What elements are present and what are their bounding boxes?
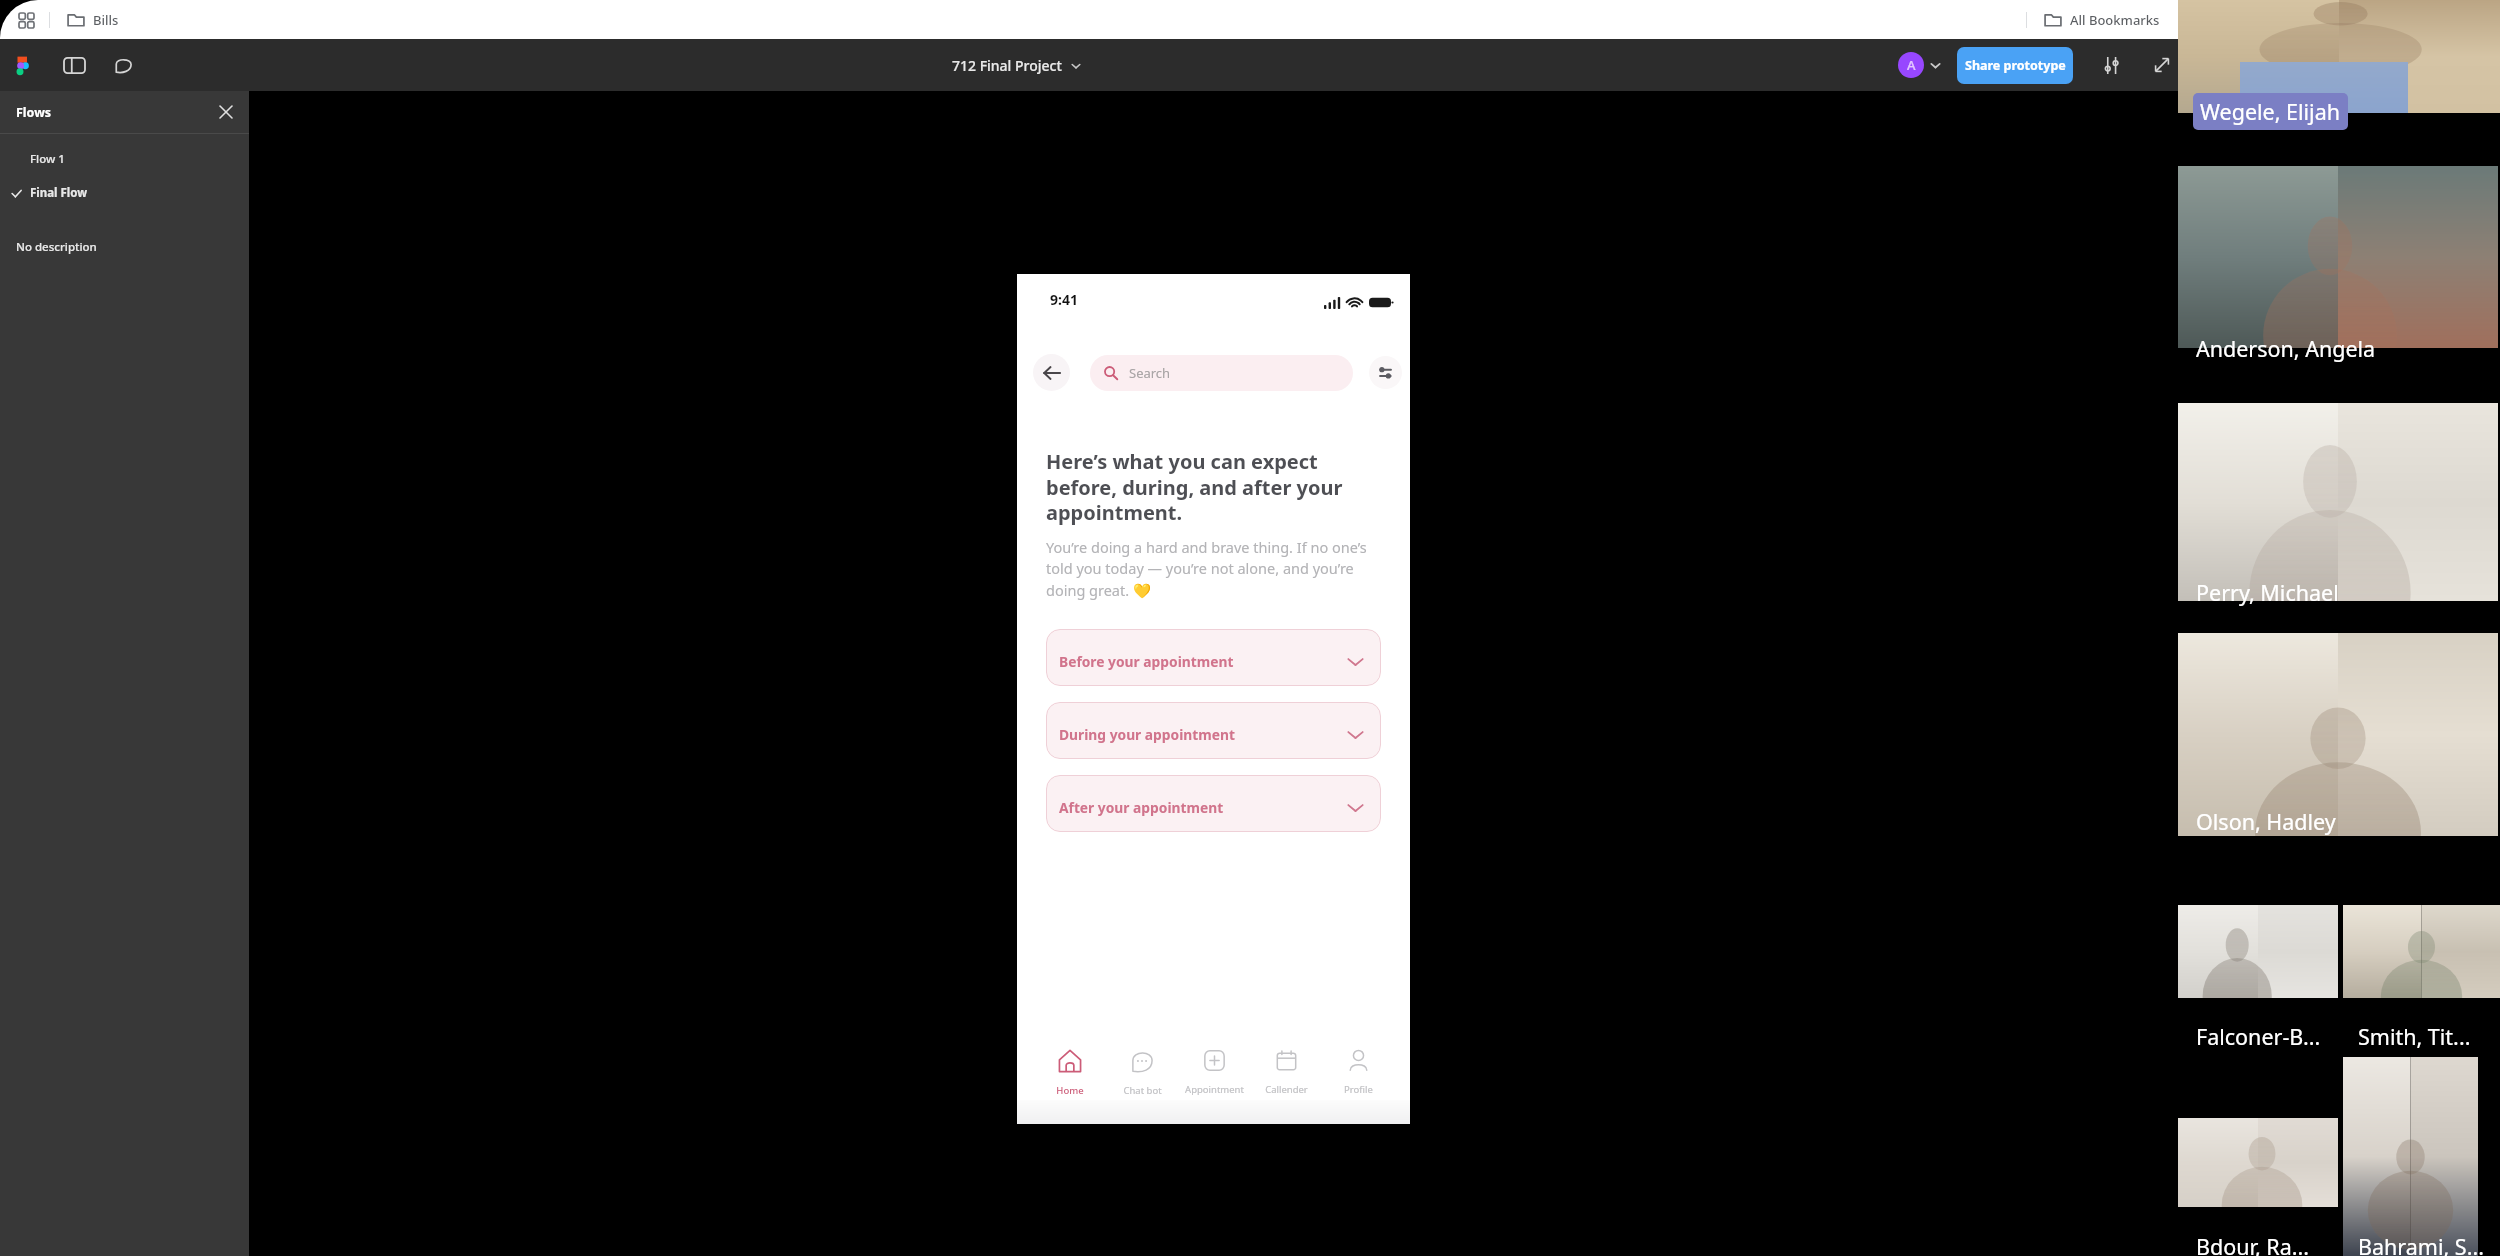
button[interactable]: Close flows	[213, 99, 239, 125]
button[interactable]: After your appointment	[1046, 775, 1381, 832]
button[interactable]: Profile	[1322, 1049, 1394, 1100]
button[interactable]: Search	[1090, 355, 1353, 391]
staticText: All Bookmarks	[2070, 11, 2160, 29]
button[interactable]: Figma home	[10, 52, 37, 79]
button[interactable]: Toggle sidebar	[61, 52, 87, 78]
staticText: Flow 1	[30, 151, 65, 167]
button[interactable]: During your appointment	[1046, 702, 1381, 759]
staticText: Bdour, Ra...	[2196, 1232, 2310, 1256]
button[interactable]: Filter	[1369, 356, 1402, 389]
staticText: Callender	[1265, 1083, 1308, 1096]
button[interactable]: Home	[1033, 1049, 1106, 1100]
staticText: Olson, Hadley	[2196, 807, 2336, 836]
staticText: Search	[1129, 364, 1171, 382]
staticText: Flows	[16, 104, 52, 121]
button[interactable]: Chat bot	[1106, 1049, 1178, 1100]
staticText: Wegele, Elijah	[2200, 97, 2341, 126]
staticText: A	[1907, 56, 1916, 74]
button[interactable]: Appointment	[1178, 1049, 1250, 1100]
staticText: Bills	[93, 11, 119, 29]
button[interactable]: Before your appointment	[1046, 629, 1381, 686]
staticText: Profile	[1344, 1083, 1373, 1096]
button[interactable]: Prototype settings	[2097, 51, 2125, 79]
staticText: Falconer-B...	[2196, 1022, 2321, 1051]
staticText: Here’s what you can expect before, durin…	[1046, 448, 1343, 525]
staticText: Perry, Michael	[2196, 578, 2339, 607]
staticText: Smith, Tit...	[2358, 1022, 2471, 1051]
staticText: Chat bot	[1123, 1084, 1162, 1097]
staticText: 9:41	[1050, 290, 1078, 309]
staticText: Home	[1056, 1084, 1084, 1097]
staticText: Share prototype	[1965, 57, 2066, 74]
button[interactable]: Share prototype	[1957, 47, 2073, 84]
button[interactable]: Final Flow	[0, 179, 249, 207]
button[interactable]: All Bookmarks	[2040, 7, 2164, 33]
button[interactable]: A	[1898, 52, 1941, 78]
staticText: 712 Final Project	[952, 56, 1062, 75]
button[interactable]: Back	[1033, 354, 1070, 391]
staticText: You’re doing a hard and brave thing. If …	[1046, 537, 1367, 600]
button[interactable]: Fullscreen	[2148, 51, 2176, 79]
staticText: Before your appointment	[1059, 652, 1234, 671]
button[interactable]: Bills	[63, 7, 123, 33]
button[interactable]: 712 Final Project	[952, 56, 1081, 75]
staticText: After your appointment	[1059, 798, 1224, 817]
staticText: No description	[16, 239, 97, 255]
button[interactable]: Callender	[1250, 1049, 1322, 1100]
staticText: Appointment	[1185, 1083, 1244, 1096]
staticText: Final Flow	[30, 185, 88, 201]
staticText: Anderson, Angela	[2196, 334, 2376, 363]
button[interactable]: Flow 1	[0, 145, 249, 173]
button[interactable]: Comment	[110, 52, 136, 78]
button[interactable]: Apps	[13, 7, 39, 33]
staticText: During your appointment	[1059, 725, 1235, 744]
staticText: Bahrami, S...	[2358, 1232, 2484, 1256]
